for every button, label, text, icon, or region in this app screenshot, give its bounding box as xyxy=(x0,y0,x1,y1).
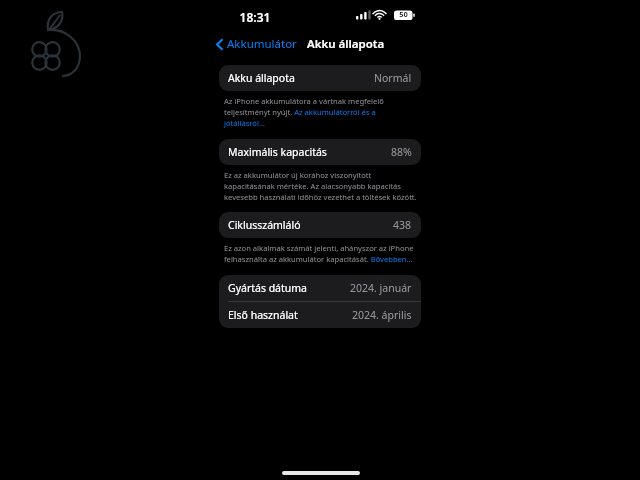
staticText: 50 xyxy=(399,9,408,19)
staticText: 438 xyxy=(393,218,412,232)
button[interactable]: Maximális kapacitás xyxy=(219,139,421,165)
staticText: Normál xyxy=(374,71,412,85)
staticText: Ciklusszámláló xyxy=(228,218,301,232)
staticText: Az iPhone akkumulátora a vártnak megfele… xyxy=(224,96,417,128)
button[interactable]: Ciklusszámláló xyxy=(219,212,421,238)
staticText: Maximális kapacitás xyxy=(228,145,327,159)
staticText: 2024. január xyxy=(350,281,412,295)
button[interactable]: Akkumulátor xyxy=(214,34,299,54)
staticText: 88% xyxy=(391,145,412,159)
staticText: Akku állapota xyxy=(228,71,295,85)
staticText: Ez azon alkalmak számát jelenti, ahánysz… xyxy=(224,243,417,264)
button[interactable]: Első használat xyxy=(219,302,421,328)
staticText: 2024. április xyxy=(352,308,412,322)
staticText: Akku állapota xyxy=(307,36,385,52)
button[interactable]: Akku állapota xyxy=(219,65,421,91)
button[interactable]: Gyártás dátuma xyxy=(219,275,421,301)
staticText: Első használat xyxy=(228,308,298,322)
staticText: Gyártás dátuma xyxy=(228,281,308,295)
staticText: Ez az akkumulátor új korához viszonyítot… xyxy=(224,170,417,202)
staticText: 18:31 xyxy=(235,9,275,25)
staticText: Akkumulátor xyxy=(227,36,297,52)
